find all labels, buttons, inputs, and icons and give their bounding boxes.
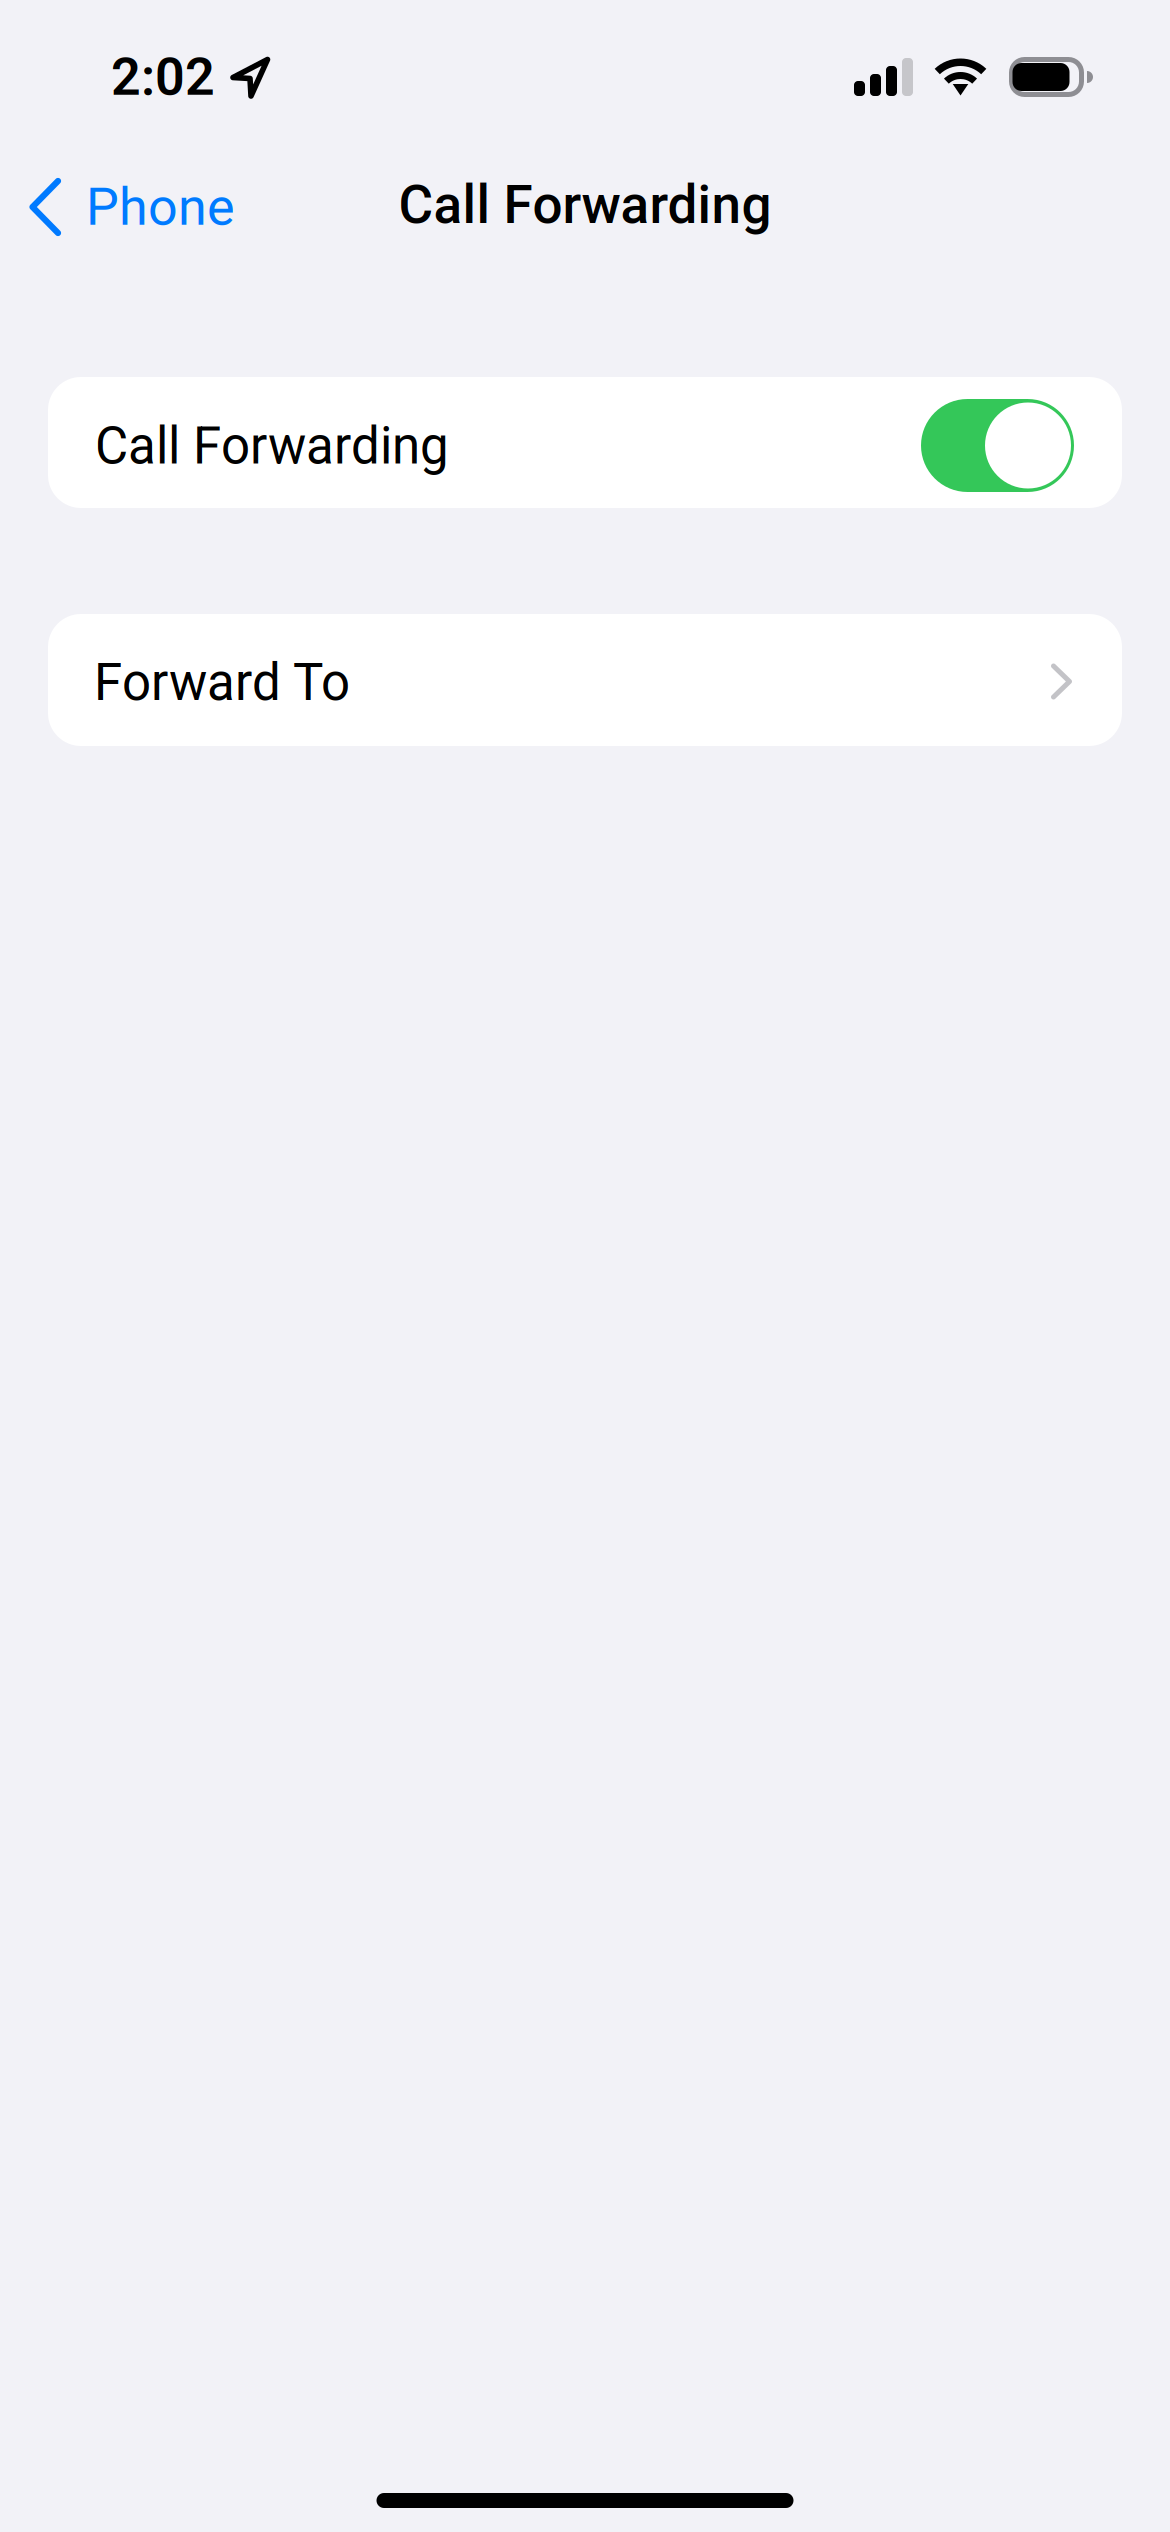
button[interactable]: Forward To xyxy=(48,614,1122,746)
staticText: 2:02 xyxy=(111,46,215,107)
staticText: Forward To xyxy=(94,653,350,712)
staticText: Phone xyxy=(86,176,235,237)
button[interactable]: Call Forwarding xyxy=(48,377,1122,508)
staticText: Call Forwarding xyxy=(95,416,449,476)
button[interactable]: Phone xyxy=(0,162,259,251)
staticText: Call Forwarding xyxy=(398,174,771,236)
